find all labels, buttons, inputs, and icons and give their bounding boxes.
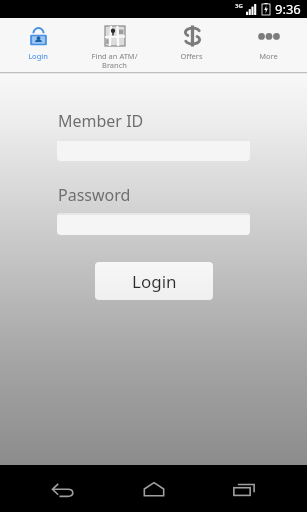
staticText: Login (132, 270, 177, 293)
staticText: Member ID (58, 110, 144, 132)
button[interactable]: Find an ATM/ Branch (76, 18, 153, 70)
button[interactable]: Back (35, 469, 91, 509)
button[interactable]: Login (95, 262, 213, 300)
button[interactable] (57, 213, 250, 235)
staticText: 3G (235, 2, 243, 10)
staticText: Find an ATM/ Branch (76, 51, 153, 70)
button[interactable] (57, 139, 250, 161)
button[interactable]: Offers (153, 18, 230, 61)
staticText: Offers (153, 51, 230, 61)
staticText: Login (0, 51, 76, 61)
button[interactable]: More (230, 18, 307, 61)
button[interactable]: Login (0, 18, 76, 61)
staticText: 9:36 (275, 0, 301, 18)
button[interactable]: Recent apps (216, 469, 272, 509)
button[interactable]: Home (126, 469, 182, 509)
staticText: Password (58, 184, 131, 206)
staticText: More (230, 51, 307, 61)
